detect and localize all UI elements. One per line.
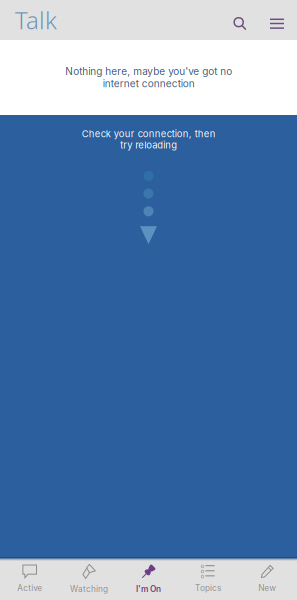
button[interactable]: I'm On [119, 561, 178, 600]
button[interactable]: Active [0, 562, 59, 600]
button[interactable]: New [238, 562, 297, 600]
staticText: Check your connection, then try reloadin… [81, 128, 215, 151]
staticText: Topics [195, 583, 221, 593]
staticText: Watching [70, 584, 108, 594]
button[interactable]: Topics [178, 562, 238, 600]
staticText: Talk [15, 4, 57, 36]
button[interactable]: Search [219, 0, 257, 40]
button[interactable]: Watching [59, 561, 119, 600]
staticText: Active [17, 583, 42, 593]
button[interactable]: Menu [257, 0, 297, 40]
staticText: I'm On [136, 584, 161, 594]
staticText: New [258, 583, 276, 593]
staticText: Nothing here, maybe you've got no intern… [65, 65, 232, 90]
